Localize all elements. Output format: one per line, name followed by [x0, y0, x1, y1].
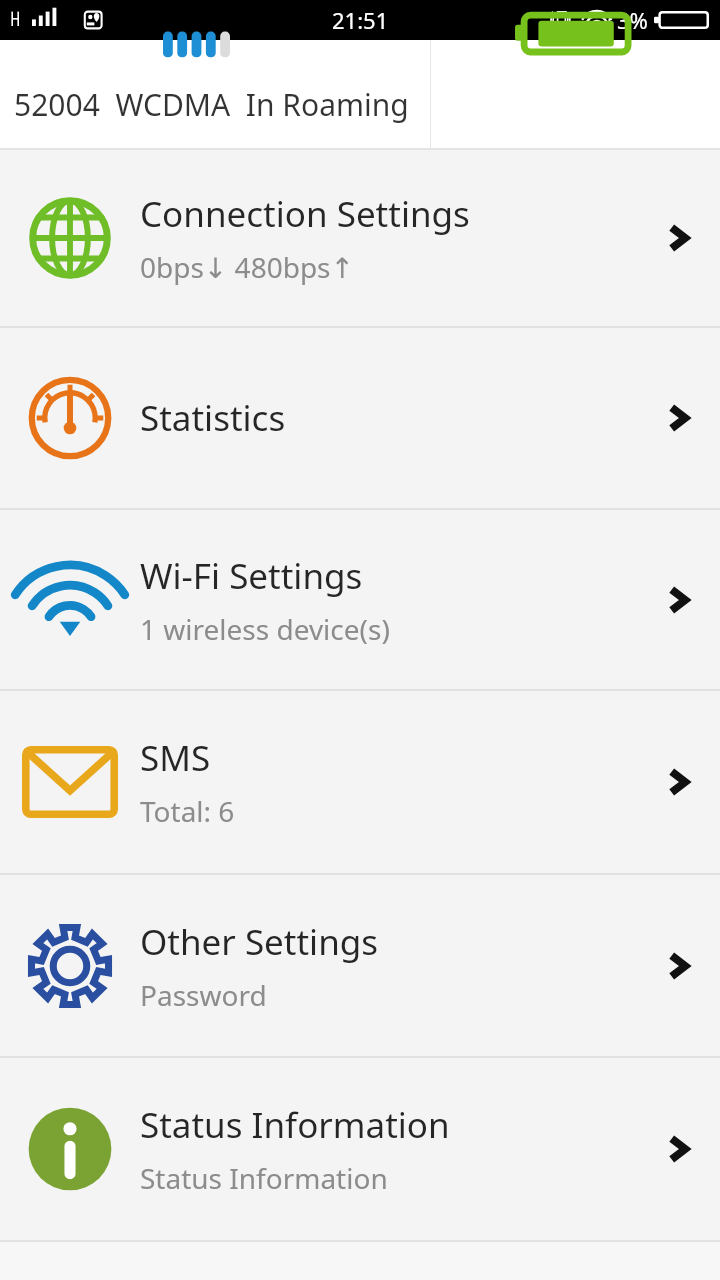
staticText: Statistics [140, 394, 286, 442]
staticText: Wi-Fi Settings [140, 552, 363, 600]
staticText: Other Settings [140, 918, 379, 966]
staticText: 52004 WCDMA In Roaming [14, 84, 409, 125]
staticText: Password [140, 976, 267, 1014]
staticText: 21:51 [332, 5, 389, 35]
button[interactable]: Other Settings [0, 875, 720, 1056]
staticText: Total: 6 [140, 792, 235, 830]
button[interactable]: SMS [0, 691, 720, 873]
button[interactable]: Wi-Fi Settings [0, 510, 720, 689]
button[interactable]: Connection Settings [0, 150, 720, 326]
button[interactable]: Status Information [0, 1058, 720, 1240]
staticText: Status Information [140, 1101, 450, 1149]
staticText: SMS [140, 734, 211, 782]
staticText: 3% [617, 5, 648, 35]
staticText: 1 wireless device(s) [140, 610, 390, 648]
button[interactable]: Statistics [0, 328, 720, 508]
staticText: Connection Settings [140, 190, 470, 238]
staticText: Status Information [140, 1159, 388, 1197]
staticText: 0bps↓ 480bps↑ [140, 248, 354, 286]
